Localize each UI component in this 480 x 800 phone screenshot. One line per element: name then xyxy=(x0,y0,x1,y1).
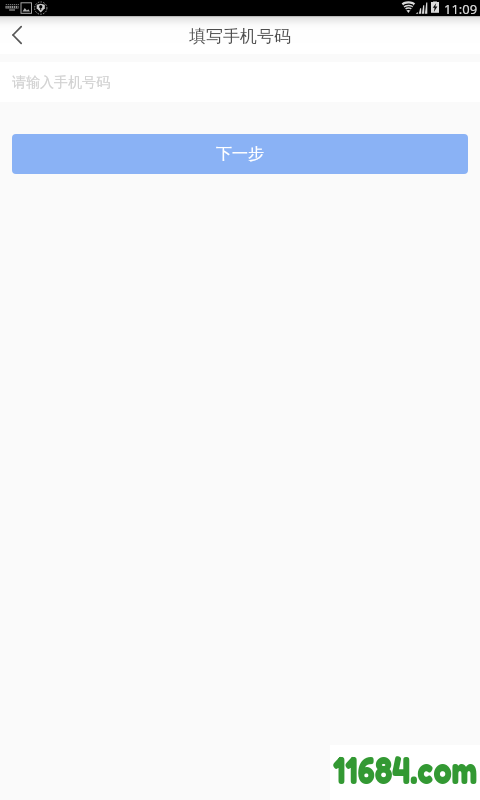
staticText: 填写手机号码 xyxy=(189,26,291,47)
staticText: 11684.com xyxy=(333,747,478,793)
button[interactable]: 下一步 xyxy=(12,134,468,174)
staticText: 11:09 xyxy=(444,0,478,16)
staticText: 下一步 xyxy=(216,144,264,164)
button[interactable]: Back xyxy=(0,16,33,54)
button[interactable]: 请输入手机号码 xyxy=(0,62,480,102)
staticText: 请输入手机号码 xyxy=(12,74,110,92)
